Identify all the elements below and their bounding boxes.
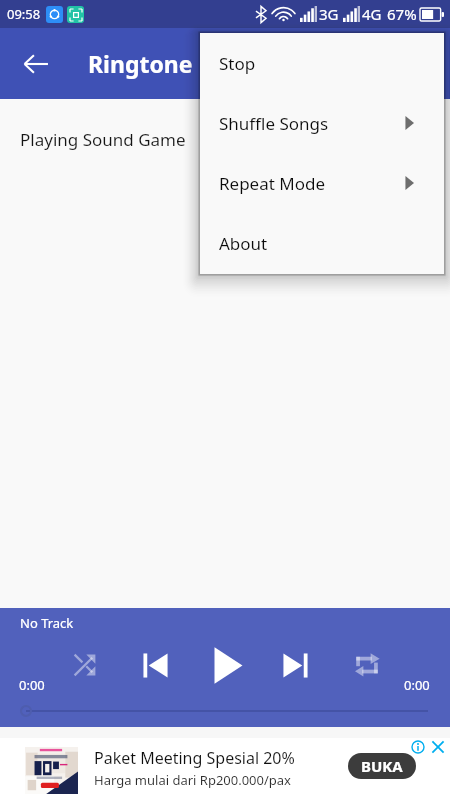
button[interactable]: BUKA — [348, 753, 416, 779]
button[interactable]: Shuffle — [62, 642, 108, 688]
button[interactable]: Back — [12, 40, 60, 88]
staticText: 4G — [362, 4, 382, 24]
staticText: Playing Sound Game — [20, 128, 186, 151]
staticText: 67% — [387, 4, 417, 24]
staticText: 09:58 — [7, 5, 41, 23]
button[interactable]: Repeat Mode — [200, 153, 444, 213]
button[interactable]: Close ad — [431, 740, 445, 754]
button[interactable]: Play — [205, 642, 251, 688]
staticText: Paket Meeting Spesial 20% — [94, 747, 295, 769]
staticText: Repeat Mode — [219, 172, 326, 195]
button[interactable]: Ad info — [411, 740, 425, 754]
staticText: Harga mulai dari Rp200.000/pax — [94, 771, 291, 789]
button[interactable]: Previous — [132, 642, 178, 688]
staticText: BUKA — [361, 756, 403, 776]
staticText: Shuffle Songs — [219, 112, 329, 135]
button[interactable]: Stop — [200, 33, 444, 93]
staticText: Ringtone — [88, 48, 193, 79]
staticText: 0:00 — [404, 676, 430, 694]
staticText: No Track — [20, 614, 74, 632]
button[interactable]: Shuffle Songs — [200, 93, 444, 153]
staticText: 0:00 — [19, 676, 45, 694]
staticText: 3G — [319, 4, 339, 24]
staticText: Stop — [219, 52, 256, 75]
button[interactable]: Repeat — [344, 642, 390, 688]
button[interactable]: Next — [272, 642, 318, 688]
button[interactable]: About — [200, 213, 444, 273]
staticText: About — [219, 232, 268, 255]
